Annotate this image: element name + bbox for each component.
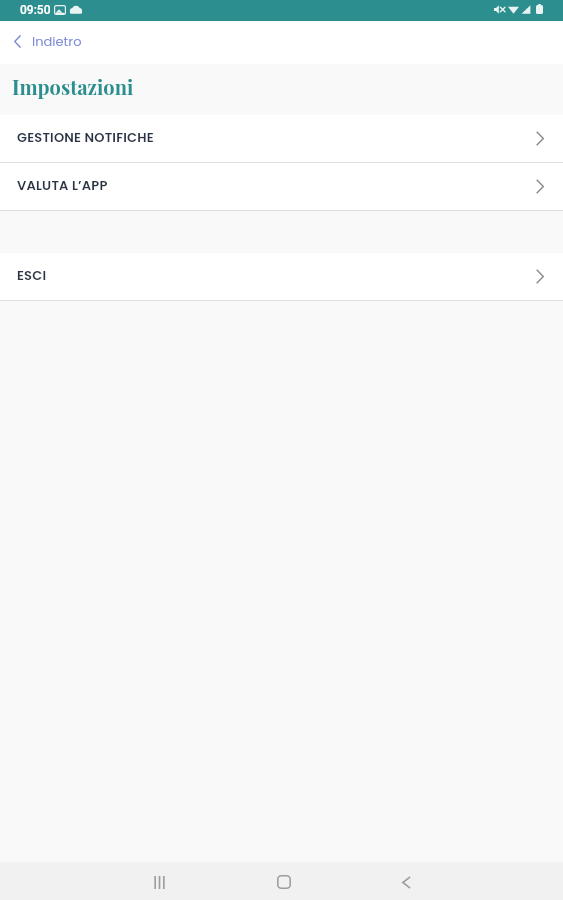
button[interactable]: ESCI bbox=[0, 253, 563, 300]
button[interactable]: VALUTA L’APP bbox=[0, 163, 563, 210]
button[interactable]: Back bbox=[382, 862, 430, 900]
button[interactable]: Home bbox=[260, 862, 308, 900]
staticText: Impostazioni bbox=[12, 73, 134, 100]
staticText: VALUTA L’APP bbox=[17, 176, 108, 194]
staticText: Indietro bbox=[32, 32, 82, 50]
staticText: GESTIONE NOTIFICHE bbox=[17, 128, 154, 146]
button[interactable]: Indietro bbox=[0, 24, 96, 61]
staticText: 09:50 bbox=[20, 3, 51, 17]
staticText: ESCI bbox=[17, 266, 47, 284]
button[interactable]: GESTIONE NOTIFICHE bbox=[0, 115, 563, 162]
button[interactable]: Recent apps bbox=[135, 862, 183, 900]
